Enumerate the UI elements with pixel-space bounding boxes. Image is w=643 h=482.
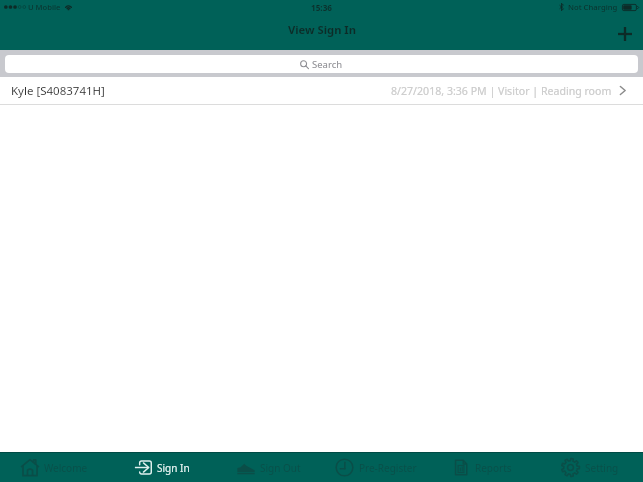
staticText: Not Charging <box>568 2 618 12</box>
staticText: U Mobile <box>28 2 61 12</box>
button[interactable]: Reports <box>429 453 536 482</box>
staticText: 15:36 <box>311 2 333 13</box>
button[interactable]: Pre-Register <box>322 453 429 482</box>
staticText: Pre-Register <box>359 461 417 475</box>
button[interactable]: Welcome <box>0 453 108 482</box>
staticText: Search <box>312 58 343 71</box>
staticText: View Sign In <box>288 22 356 37</box>
button[interactable]: Search <box>5 55 638 73</box>
button[interactable]: Add <box>607 16 643 51</box>
staticText: Setting <box>585 461 619 475</box>
staticText: Sign In <box>157 461 190 475</box>
staticText: 8/27/2018, 3:36 PM | Visitor | Reading r… <box>391 84 612 98</box>
button[interactable]: Sign In <box>108 453 215 482</box>
staticText: Reports <box>475 461 512 475</box>
staticText: Welcome <box>44 461 88 475</box>
button[interactable]: Kyle [S4083741H] <box>0 77 643 104</box>
staticText: Sign Out <box>260 461 301 475</box>
button[interactable]: Setting <box>536 453 643 482</box>
button[interactable]: Sign Out <box>215 453 322 482</box>
staticText: Kyle [S4083741H] <box>11 83 105 99</box>
